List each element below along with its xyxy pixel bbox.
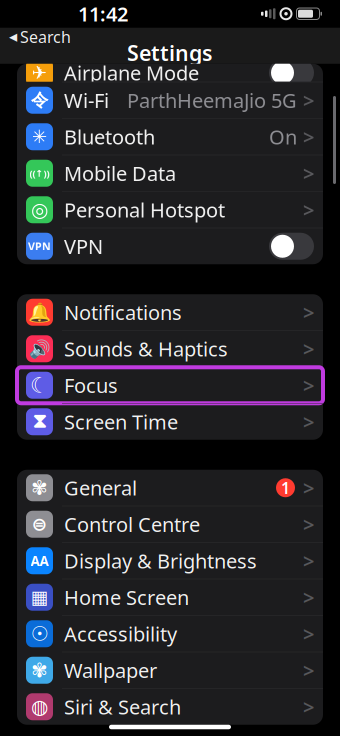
- button[interactable]: ⧗: [17, 404, 323, 440]
- staticText: AA: [30, 552, 48, 570]
- staticText: >: [303, 372, 314, 399]
- staticText: ((↑)): [29, 167, 49, 179]
- staticText: Siri & Search: [64, 693, 181, 720]
- staticText: ✾: [31, 659, 48, 682]
- staticText: Display & Brightness: [64, 547, 257, 574]
- button[interactable]: 🔊: [17, 331, 323, 367]
- staticText: >: [303, 657, 314, 684]
- staticText: >: [303, 299, 314, 326]
- staticText: Accessibility: [64, 620, 177, 647]
- button[interactable]: VPN: [17, 228, 323, 264]
- staticText: ☾: [30, 373, 49, 397]
- staticText: >: [303, 547, 314, 574]
- staticText: >: [303, 693, 314, 720]
- staticText: Bluetooth: [64, 123, 155, 150]
- button[interactable]: ☾: [17, 367, 323, 403]
- button[interactable]: ✾: [17, 470, 323, 506]
- staticText: ✈︎: [31, 62, 47, 83]
- staticText: >: [303, 511, 314, 538]
- staticText: General: [64, 474, 137, 501]
- staticText: 令: [31, 90, 48, 111]
- staticText: 1: [281, 477, 290, 498]
- staticText: VPN: [28, 239, 51, 253]
- staticText: >: [303, 474, 314, 501]
- button[interactable]: ☉: [17, 616, 323, 652]
- staticText: Screen Time: [64, 408, 178, 435]
- staticText: >: [303, 335, 314, 362]
- staticText: ✾: [31, 476, 48, 499]
- button[interactable]: ✈︎: [17, 55, 323, 91]
- staticText: Search: [20, 26, 71, 47]
- staticText: On: [269, 123, 297, 150]
- staticText: ⊜: [31, 514, 47, 535]
- staticText: Mobile Data: [64, 160, 176, 187]
- staticText: VPN: [64, 233, 103, 260]
- staticText: Focus: [64, 372, 118, 399]
- button[interactable]: 🔔: [17, 294, 323, 330]
- button[interactable]: ◍: [17, 689, 323, 725]
- staticText: Airplane Mode: [64, 59, 199, 86]
- staticText: >: [303, 87, 314, 114]
- staticText: ☉: [30, 622, 48, 645]
- staticText: >: [303, 620, 314, 647]
- button[interactable]: ◎: [17, 192, 323, 228]
- button[interactable]: ▦: [17, 579, 323, 615]
- staticText: >: [303, 584, 314, 611]
- staticText: >: [303, 408, 314, 435]
- staticText: Sounds & Haptics: [64, 335, 228, 362]
- staticText: 🔔: [28, 302, 51, 323]
- staticText: Notifications: [64, 299, 182, 326]
- staticText: ParthHeemaJio 5G: [127, 87, 297, 114]
- button[interactable]: ((↑)): [17, 155, 323, 191]
- staticText: 🔊: [28, 339, 50, 359]
- staticText: Home Screen: [64, 584, 189, 611]
- button[interactable]: ⊜: [17, 506, 323, 542]
- staticText: 11:42: [78, 0, 128, 27]
- staticText: ◀: [9, 31, 17, 43]
- staticText: Wi-Fi: [64, 87, 109, 114]
- staticText: ✳︎: [31, 126, 47, 147]
- staticText: ◎: [31, 198, 48, 221]
- staticText: >: [303, 196, 314, 223]
- staticText: ◍: [31, 695, 48, 718]
- button[interactable]: ✾: [17, 652, 323, 688]
- button[interactable]: ◀: [0, 26, 71, 65]
- staticText: Wallpaper: [64, 657, 157, 684]
- staticText: ⧗: [32, 412, 46, 431]
- staticText: >: [303, 123, 314, 150]
- button[interactable]: AA: [17, 543, 323, 579]
- button[interactable]: ✳︎: [17, 119, 323, 155]
- staticText: Personal Hotspot: [64, 196, 225, 223]
- staticText: >: [303, 160, 314, 187]
- staticText: ▦: [30, 587, 48, 608]
- staticText: Settings: [127, 39, 213, 67]
- button[interactable]: 令: [17, 82, 323, 118]
- staticText: Control Centre: [64, 511, 200, 538]
